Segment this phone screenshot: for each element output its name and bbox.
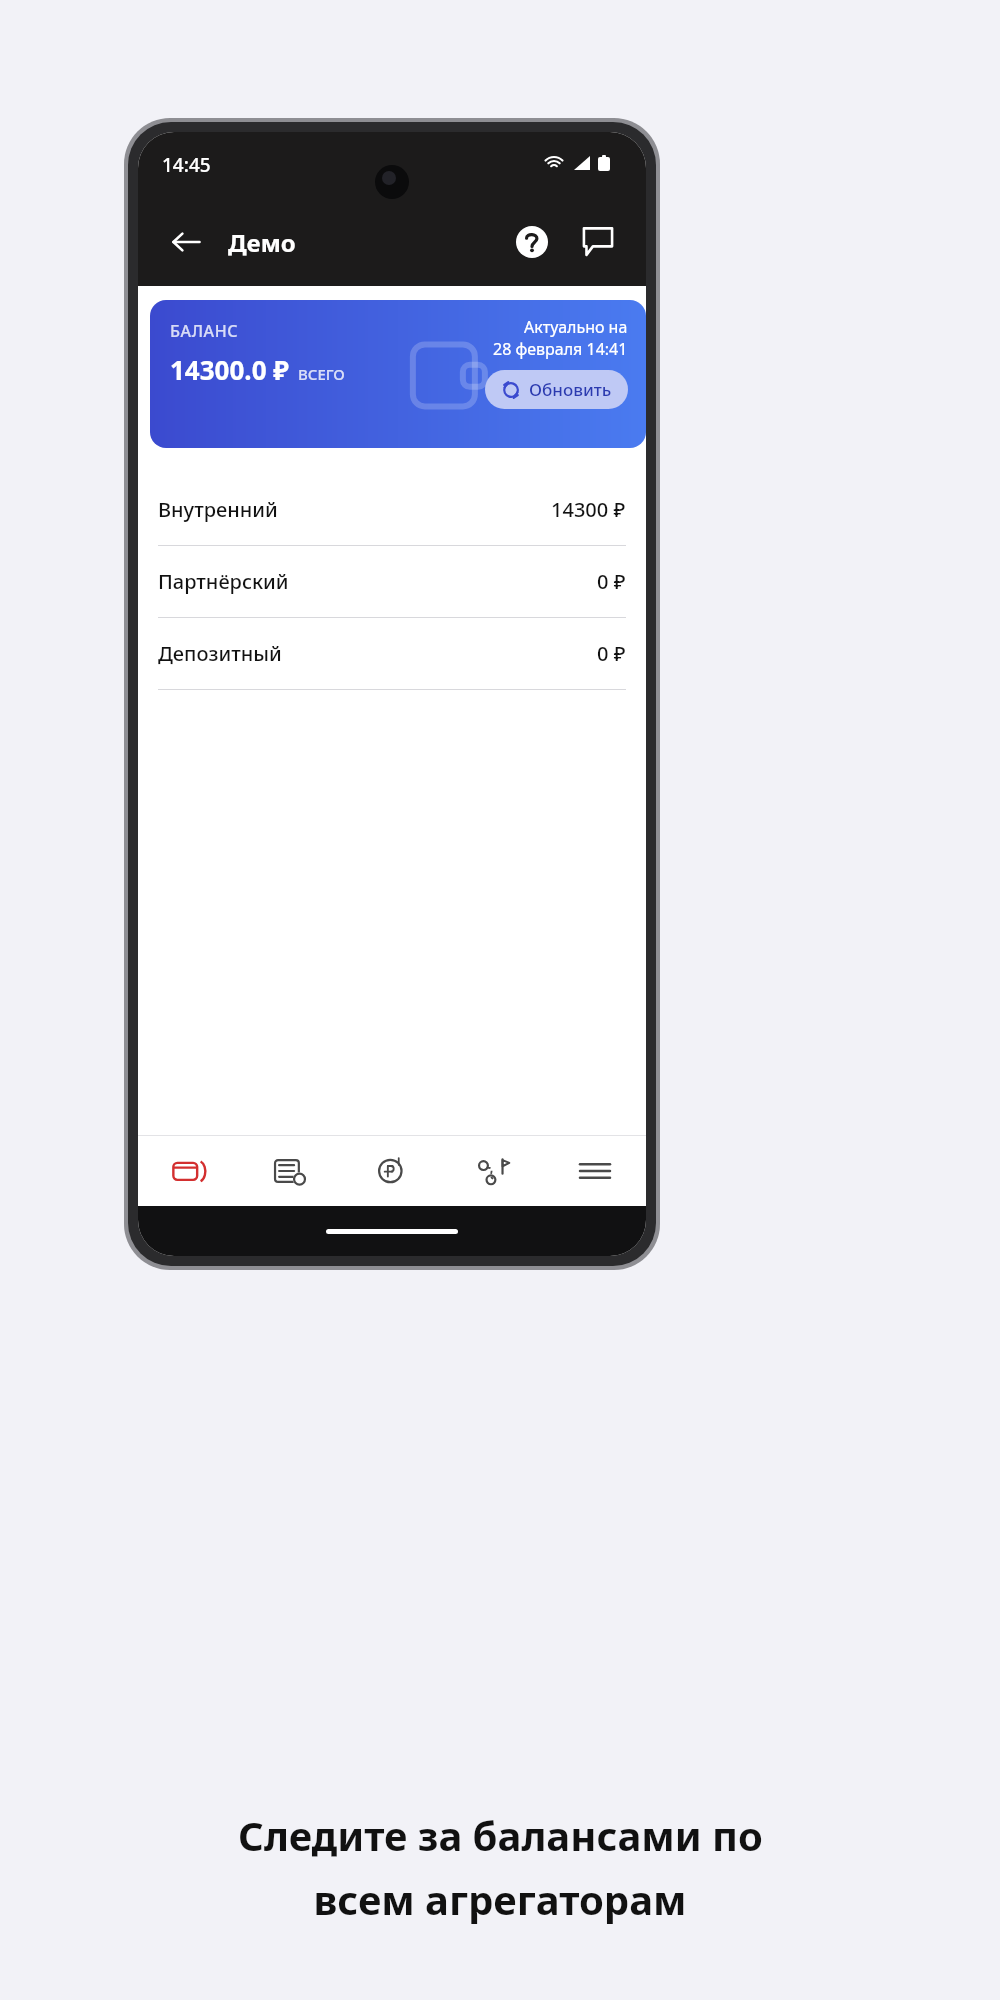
staticText: 14:45 bbox=[162, 152, 211, 178]
staticText: Демо bbox=[228, 226, 296, 259]
staticText: Депозитный bbox=[158, 640, 282, 667]
button[interactable]: Finance bbox=[340, 1136, 442, 1206]
staticText: 14300 ₽ bbox=[551, 496, 626, 523]
staticText: 0 ₽ bbox=[597, 568, 626, 595]
button[interactable]: Партнёрский bbox=[138, 546, 646, 618]
staticText: Обновить bbox=[529, 378, 612, 401]
staticText: ВСЕГО bbox=[298, 364, 345, 384]
staticText: БАЛАНС bbox=[170, 320, 239, 342]
button[interactable]: Cards bbox=[138, 1136, 239, 1206]
staticText: 0 ₽ bbox=[597, 640, 626, 667]
staticText: 14300.0 ₽ bbox=[170, 352, 289, 387]
button[interactable]: Внутренний bbox=[138, 474, 646, 546]
staticText: 28 февраля 14:41 bbox=[493, 338, 628, 360]
staticText: Следите за балансами по bbox=[238, 1808, 763, 1862]
button[interactable]: Back bbox=[160, 216, 212, 268]
button[interactable]: Депозитный bbox=[138, 618, 646, 690]
staticText: Партнёрский bbox=[158, 568, 289, 595]
button[interactable]: Routes bbox=[442, 1136, 544, 1206]
button[interactable]: БАЛАНС bbox=[150, 300, 646, 448]
staticText: всем агрегаторам bbox=[313, 1872, 687, 1926]
button[interactable]: Orders bbox=[239, 1136, 340, 1206]
button[interactable]: Обновить bbox=[485, 370, 628, 409]
button[interactable]: Menu bbox=[544, 1136, 646, 1206]
button[interactable]: Chat bbox=[572, 216, 624, 268]
staticText: Актуально на bbox=[524, 316, 628, 338]
staticText: Внутренний bbox=[158, 496, 278, 523]
button[interactable]: Help bbox=[506, 216, 558, 268]
